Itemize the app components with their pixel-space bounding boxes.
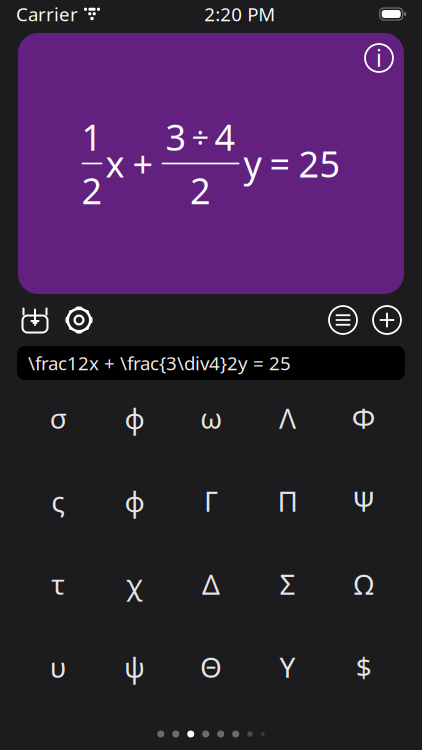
staticText: Carrier <box>16 2 78 26</box>
staticText: χ <box>126 565 143 603</box>
button[interactable]: Ψ <box>326 481 402 521</box>
staticText: \frac12x + \frac{3\div4}2y = 25 <box>28 351 291 375</box>
button[interactable]: φ <box>96 481 173 521</box>
staticText: 25 <box>298 140 340 187</box>
staticText: 1 <box>81 113 102 161</box>
button[interactable]: ς <box>20 481 96 521</box>
staticText: y <box>243 140 261 187</box>
button[interactable]: Add equation <box>365 298 409 342</box>
staticText: 2 <box>81 166 102 214</box>
staticText: = <box>269 140 290 187</box>
staticText: Π <box>277 482 297 520</box>
staticText: 4 <box>214 113 235 161</box>
button[interactable]: τ <box>20 564 96 604</box>
staticText: 2 <box>190 166 211 214</box>
button[interactable]: ϕ <box>96 398 173 438</box>
button[interactable]: Π <box>249 481 326 521</box>
staticText: σ <box>50 399 67 437</box>
button[interactable]: Φ <box>326 398 402 438</box>
button[interactable]: χ <box>96 564 173 604</box>
staticText: τ <box>51 565 65 603</box>
staticText: 3 <box>165 113 186 161</box>
staticText: Γ <box>204 482 218 520</box>
button[interactable]: Ω <box>326 564 402 604</box>
staticText: ÷ <box>191 116 209 157</box>
staticText: ς <box>51 482 65 520</box>
staticText: Ψ <box>352 482 375 520</box>
button[interactable]: Info <box>362 41 396 75</box>
button[interactable]: Γ <box>173 481 249 521</box>
button[interactable]: \frac12x + \frac{3\div4}2y = 25 <box>17 346 405 380</box>
button[interactable]: σ <box>20 398 96 438</box>
staticText: Φ <box>352 399 376 437</box>
button[interactable]: Θ <box>173 647 249 687</box>
staticText: 2:20 PM <box>204 2 275 26</box>
staticText: + <box>132 140 153 187</box>
staticText: ψ <box>124 648 145 686</box>
staticText: Σ <box>279 565 295 603</box>
staticText: i <box>376 43 382 73</box>
staticText: $ <box>356 648 372 686</box>
staticText: Υ <box>279 648 295 686</box>
button[interactable]: υ <box>20 647 96 687</box>
button[interactable]: $ <box>326 647 402 687</box>
button[interactable]: Σ <box>249 564 326 604</box>
staticText: Λ <box>279 399 296 437</box>
staticText: Ω <box>354 565 374 603</box>
button[interactable]: Υ <box>249 647 326 687</box>
button[interactable]: Λ <box>249 398 326 438</box>
staticText: ϕ <box>125 399 145 437</box>
button[interactable]: Saved equations <box>321 298 365 342</box>
staticText: x <box>105 140 124 187</box>
staticText: ω <box>200 399 222 437</box>
button[interactable]: Δ <box>173 564 249 604</box>
button[interactable]: ω <box>173 398 249 438</box>
staticText: φ <box>125 482 145 520</box>
button[interactable]: Save <box>13 298 57 342</box>
button[interactable]: ψ <box>96 647 173 687</box>
button[interactable]: Settings <box>57 298 101 342</box>
staticText: Δ <box>202 565 220 603</box>
staticText: υ <box>50 648 67 686</box>
staticText: Θ <box>200 648 222 686</box>
